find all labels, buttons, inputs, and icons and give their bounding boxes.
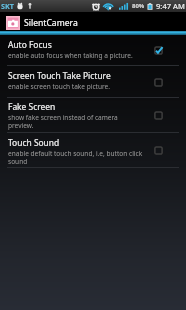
staticText: Screen Touch Take Picture bbox=[8, 70, 111, 82]
staticText: Touch Sound bbox=[8, 137, 60, 149]
button[interactable]: Fake Screen checkbox bbox=[151, 108, 165, 122]
staticText: 80% bbox=[132, 2, 145, 10]
staticText: show fake screen instead of camera previ… bbox=[8, 113, 118, 130]
button[interactable]: Auto Focus checkbox bbox=[151, 43, 165, 57]
staticText: SKT bbox=[1, 1, 14, 11]
button[interactable]: App icon bbox=[6, 16, 20, 30]
staticText: Fake Screen bbox=[8, 101, 56, 113]
button[interactable]: Fake Screen bbox=[0, 98, 186, 132]
button[interactable]: Screen Touch Take Picture bbox=[0, 66, 186, 97]
staticText: enable default touch sound, i.e, button … bbox=[8, 149, 143, 166]
button[interactable]: Touch Sound bbox=[0, 133, 186, 167]
staticText: 9:47 AM bbox=[156, 1, 185, 11]
button[interactable]: Auto Focus bbox=[0, 35, 186, 65]
button[interactable]: Screen Touch Take Picture checkbox bbox=[151, 75, 165, 89]
staticText: SilentCamera bbox=[24, 17, 78, 29]
staticText: Auto Focus bbox=[8, 39, 52, 51]
staticText: enable screen touch take picture. bbox=[8, 82, 110, 91]
staticText: enable auto focus when taking a picture. bbox=[8, 51, 133, 60]
button[interactable]: Touch Sound checkbox bbox=[151, 143, 165, 157]
